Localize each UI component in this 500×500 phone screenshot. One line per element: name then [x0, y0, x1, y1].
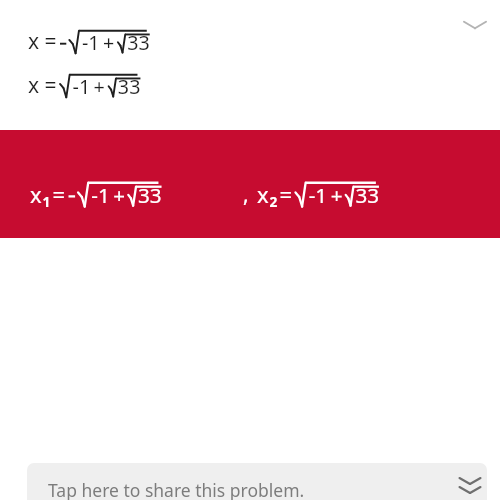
- button[interactable]: Collapse: [457, 8, 493, 42]
- button[interactable]: Expand: [452, 466, 488, 500]
- button[interactable]: [27, 463, 487, 500]
- button[interactable]: [0, 130, 500, 238]
